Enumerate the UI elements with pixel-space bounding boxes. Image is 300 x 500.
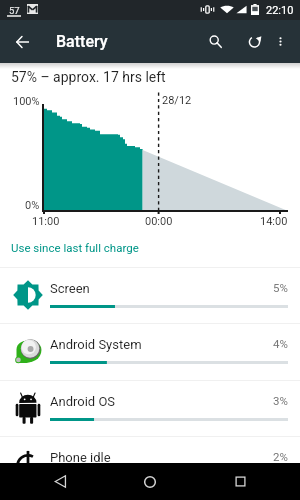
staticText: 00:00 (145, 215, 173, 228)
staticText: 4% (273, 337, 288, 350)
staticText: 2% (273, 450, 288, 463)
staticText: Android System (50, 337, 142, 352)
staticText: Screen (50, 281, 90, 296)
button[interactable]: Back (30, 463, 90, 500)
button[interactable]: Search (203, 20, 227, 63)
button[interactable]: Refresh (242, 20, 266, 63)
staticText: 11:00 (32, 215, 60, 228)
staticText: 28/12 (162, 94, 192, 107)
staticText: Use since last full charge (11, 241, 139, 254)
staticText: 5% (273, 281, 288, 294)
button[interactable]: Navigate up (6, 20, 38, 63)
staticText: 14:00 (260, 215, 288, 228)
staticText: 3% (273, 394, 288, 407)
staticText: Android OS (50, 394, 116, 409)
button[interactable]: Android OS (0, 380, 300, 436)
staticText: 22:10 (266, 4, 294, 17)
button[interactable]: Phone idle (0, 436, 300, 492)
button[interactable]: Recent apps (210, 463, 270, 500)
staticText: 100% (13, 95, 40, 108)
button[interactable]: More options (268, 20, 292, 63)
button[interactable]: Screen (0, 267, 300, 323)
button[interactable]: Use since last full charge (0, 235, 300, 259)
button[interactable]: Home (120, 463, 180, 500)
staticText: Battery (56, 32, 108, 51)
staticText: 57 (9, 5, 20, 16)
staticText: Phone idle (50, 450, 111, 465)
staticText: 57% – approx. 17 hrs left (11, 69, 166, 85)
button[interactable]: Android System (0, 323, 300, 379)
staticText: 0% (25, 199, 40, 212)
